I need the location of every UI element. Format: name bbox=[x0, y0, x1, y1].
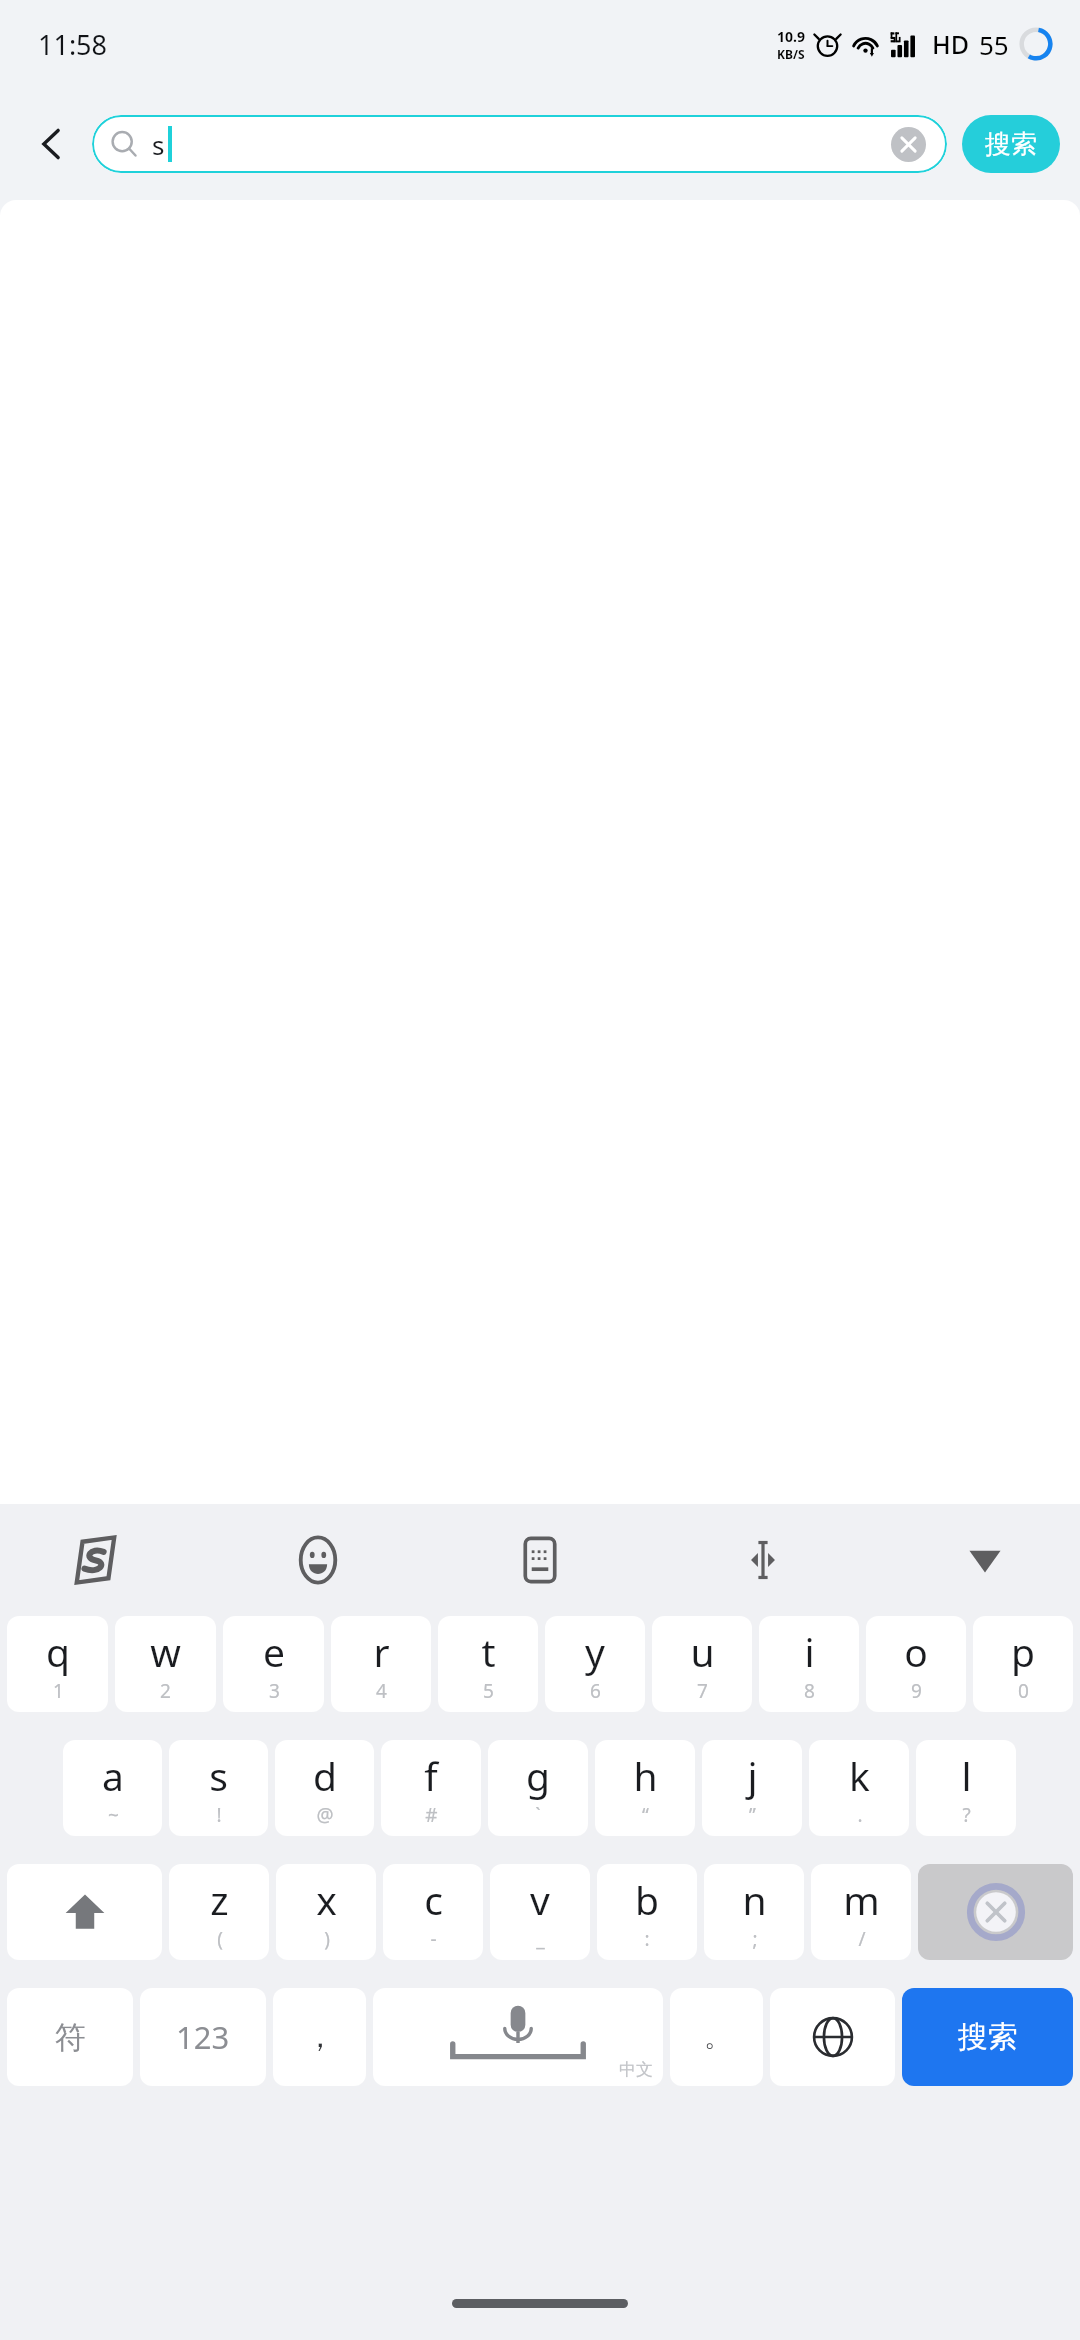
staticText: m bbox=[843, 1873, 880, 1926]
staticText: e bbox=[263, 1625, 285, 1678]
staticText: 5 bbox=[483, 1678, 494, 1704]
staticText: f bbox=[424, 1749, 438, 1802]
staticText: d bbox=[313, 1749, 337, 1802]
staticText: 搜索 bbox=[958, 2018, 1018, 2056]
button[interactable]: Shift bbox=[7, 1864, 162, 1960]
staticText: _ bbox=[536, 1926, 545, 1952]
staticText: 4 bbox=[376, 1678, 387, 1704]
staticText: 搜索 bbox=[985, 128, 1037, 161]
staticText: j bbox=[747, 1749, 758, 1802]
staticText: 10.9 bbox=[777, 27, 805, 46]
staticText: KB/S bbox=[777, 46, 805, 62]
staticText: p bbox=[1011, 1625, 1035, 1678]
staticText: t bbox=[481, 1625, 496, 1678]
staticText: g bbox=[526, 1749, 550, 1802]
button[interactable]: k bbox=[809, 1740, 909, 1836]
staticText: HD bbox=[932, 27, 969, 61]
button[interactable]: n bbox=[704, 1864, 804, 1960]
button[interactable]: s bbox=[169, 1740, 268, 1836]
button[interactable]: o bbox=[866, 1616, 966, 1712]
button[interactable]: Hide keyboard bbox=[948, 1523, 1022, 1597]
button[interactable]: 123 bbox=[140, 1988, 266, 2086]
button[interactable]: d bbox=[275, 1740, 374, 1836]
button[interactable]: 搜索 bbox=[962, 115, 1060, 173]
button[interactable]: w bbox=[115, 1616, 216, 1712]
button[interactable]: Backspace bbox=[918, 1864, 1073, 1960]
staticText: : bbox=[644, 1926, 650, 1952]
staticText: s bbox=[152, 127, 165, 162]
staticText: n bbox=[742, 1873, 767, 1926]
staticText: k bbox=[849, 1749, 870, 1802]
staticText: z bbox=[210, 1873, 229, 1926]
staticText: 8 bbox=[804, 1678, 815, 1704]
button[interactable]: Back bbox=[20, 112, 84, 176]
staticText: “ bbox=[642, 1802, 649, 1828]
button[interactable]: m bbox=[811, 1864, 911, 1960]
staticText: 2 bbox=[160, 1678, 171, 1704]
staticText: w bbox=[150, 1625, 181, 1678]
button[interactable]: c bbox=[383, 1864, 483, 1960]
staticText: x bbox=[316, 1873, 337, 1926]
staticText: r bbox=[373, 1625, 390, 1678]
button[interactable]: Sogou input bbox=[58, 1523, 132, 1597]
staticText: 。 bbox=[704, 2021, 730, 2054]
button[interactable]: ， bbox=[273, 1988, 366, 2086]
button[interactable]: v bbox=[490, 1864, 590, 1960]
button[interactable]: 。 bbox=[670, 1988, 763, 2086]
button[interactable]: s bbox=[92, 115, 947, 173]
button[interactable]: Switch language bbox=[770, 1988, 895, 2086]
staticText: ; bbox=[752, 1926, 758, 1952]
button[interactable]: p bbox=[973, 1616, 1073, 1712]
staticText: ` bbox=[535, 1802, 541, 1828]
staticText: s bbox=[209, 1749, 228, 1802]
staticText: 9 bbox=[911, 1678, 922, 1704]
staticText: u bbox=[690, 1625, 715, 1678]
staticText: ( bbox=[217, 1926, 223, 1952]
button[interactable]: i bbox=[759, 1616, 859, 1712]
staticText: - bbox=[430, 1926, 437, 1952]
button[interactable]: t bbox=[438, 1616, 538, 1712]
staticText: / bbox=[858, 1926, 866, 1952]
button[interactable]: l bbox=[916, 1740, 1016, 1836]
staticText: 7 bbox=[697, 1678, 708, 1704]
staticText: y bbox=[585, 1625, 605, 1678]
staticText: 符 bbox=[55, 2018, 86, 2057]
staticText: ~ bbox=[108, 1802, 119, 1828]
button[interactable]: j bbox=[702, 1740, 802, 1836]
button[interactable]: y bbox=[545, 1616, 645, 1712]
button[interactable]: Space bbox=[373, 1988, 663, 2086]
button[interactable]: h bbox=[595, 1740, 695, 1836]
button[interactable]: u bbox=[652, 1616, 752, 1712]
button[interactable]: q bbox=[7, 1616, 108, 1712]
button[interactable]: z bbox=[169, 1864, 269, 1960]
staticText: ) bbox=[324, 1926, 330, 1952]
button[interactable]: 搜索 bbox=[902, 1988, 1073, 2086]
staticText: i bbox=[804, 1625, 815, 1678]
staticText: @ bbox=[316, 1802, 334, 1828]
staticText: v bbox=[530, 1873, 550, 1926]
button[interactable]: b bbox=[597, 1864, 697, 1960]
button[interactable]: r bbox=[331, 1616, 431, 1712]
button[interactable]: Emoji bbox=[281, 1523, 355, 1597]
staticText: 0 bbox=[1018, 1678, 1029, 1704]
button[interactable]: g bbox=[488, 1740, 588, 1836]
staticText: q bbox=[46, 1625, 70, 1678]
staticText: 55 bbox=[979, 27, 1009, 62]
staticText: ! bbox=[216, 1802, 222, 1828]
button[interactable]: Clear bbox=[887, 123, 929, 165]
staticText: # bbox=[425, 1802, 438, 1828]
staticText: ” bbox=[749, 1802, 756, 1828]
button[interactable]: e bbox=[223, 1616, 324, 1712]
staticText: 123 bbox=[176, 2016, 230, 2058]
button[interactable]: f bbox=[381, 1740, 481, 1836]
button[interactable]: a bbox=[63, 1740, 162, 1836]
staticText: . bbox=[857, 1802, 863, 1828]
button[interactable]: Keyboard layout bbox=[503, 1523, 577, 1597]
staticText: 3 bbox=[269, 1678, 280, 1704]
staticText: ? bbox=[962, 1802, 971, 1828]
button[interactable]: Move cursor bbox=[726, 1523, 800, 1597]
button[interactable]: x bbox=[276, 1864, 376, 1960]
button[interactable]: 符 bbox=[7, 1988, 133, 2086]
staticText: 11:58 bbox=[38, 26, 108, 63]
staticText: a bbox=[102, 1749, 124, 1802]
